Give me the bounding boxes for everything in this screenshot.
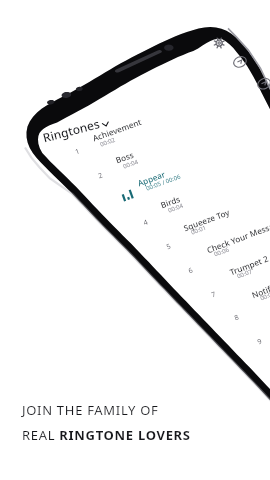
button[interactable]: Now playing <box>121 189 134 201</box>
staticText: 00:07 <box>236 267 254 280</box>
button[interactable]: Settings <box>212 36 226 50</box>
staticText: 00:05 / 00:06 <box>145 172 182 192</box>
button[interactable]: Shuffle <box>256 76 270 91</box>
button[interactable]: Trumpet 2 <box>228 252 270 277</box>
button[interactable]: Ringtones <box>41 113 110 145</box>
staticText: Ringtones <box>41 115 101 145</box>
staticText: 5 <box>165 241 173 252</box>
staticText: 00:06 <box>213 245 231 258</box>
staticText: 8 <box>233 312 241 323</box>
staticText: 6 <box>187 265 195 276</box>
staticText: 2 <box>97 170 105 181</box>
staticText: REAL RINGTONE LOVERS <box>22 426 191 444</box>
staticText: 4 <box>142 217 150 228</box>
staticText: 00:04 <box>167 201 185 214</box>
button[interactable]: Repeat <box>232 55 248 69</box>
button[interactable]: Squeeze Toy <box>182 206 231 233</box>
button[interactable]: Boss <box>114 149 136 165</box>
staticText: JOIN THE FAMILY OF <box>22 401 159 419</box>
staticText: 00:03 <box>259 289 270 302</box>
button[interactable]: Check Your Message <box>205 217 270 255</box>
staticText: 00:01 <box>190 223 208 236</box>
button[interactable]: Appear <box>136 168 167 188</box>
staticText: 9 <box>256 336 264 347</box>
staticText: 1 <box>74 146 82 157</box>
button[interactable]: Achievement <box>91 116 143 143</box>
button[interactable]: Birds <box>159 193 182 210</box>
button[interactable]: Notification <box>250 273 270 300</box>
staticText: 00:02 <box>99 136 117 149</box>
staticText: 00:04 <box>122 158 140 170</box>
staticText: 7 <box>210 289 218 300</box>
